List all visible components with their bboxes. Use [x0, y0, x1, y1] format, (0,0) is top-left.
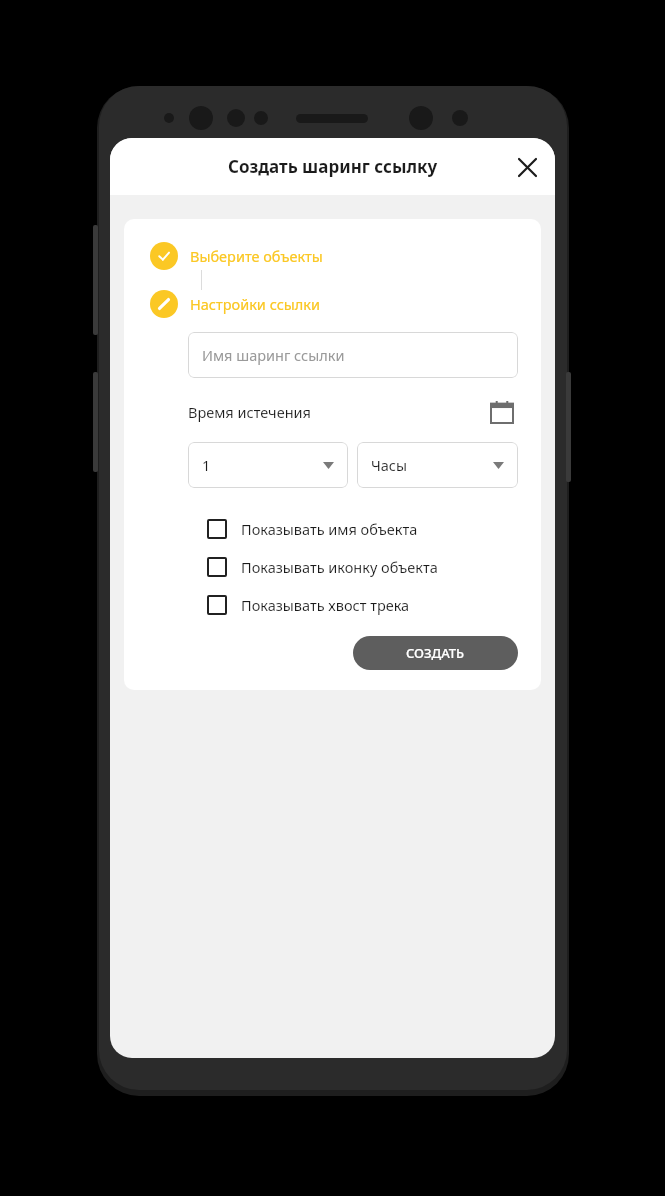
- button[interactable]: Показывать хвост трека: [207, 586, 541, 624]
- staticText: Время истечения: [188, 402, 311, 422]
- staticText: Имя шаринг ссылки: [202, 345, 345, 365]
- staticText: Настройки ссылки: [190, 294, 321, 314]
- staticText: Показывать хвост трека: [241, 595, 410, 615]
- button[interactable]: СОЗДАТЬ: [353, 636, 518, 670]
- staticText: Показывать иконку объекта: [241, 557, 438, 577]
- button[interactable]: Выберите объекты: [150, 242, 541, 270]
- staticText: СОЗДАТЬ: [406, 644, 465, 662]
- staticText: 1: [202, 455, 211, 475]
- button[interactable]: 1: [188, 442, 348, 488]
- button[interactable]: Имя шаринг ссылки: [188, 332, 518, 378]
- button[interactable]: Показывать иконку объекта: [207, 548, 541, 586]
- staticText: Часы: [371, 455, 407, 475]
- staticText: Создать шаринг ссылку: [228, 155, 438, 178]
- button[interactable]: Часы: [357, 442, 518, 488]
- button[interactable]: Показывать имя объекта: [207, 510, 541, 548]
- button[interactable]: Close: [507, 147, 547, 187]
- button[interactable]: Настройки ссылки: [150, 290, 541, 318]
- staticText: Показывать имя объекта: [241, 519, 418, 539]
- button[interactable]: Pick date: [486, 396, 518, 428]
- staticText: Выберите объекты: [190, 246, 323, 266]
